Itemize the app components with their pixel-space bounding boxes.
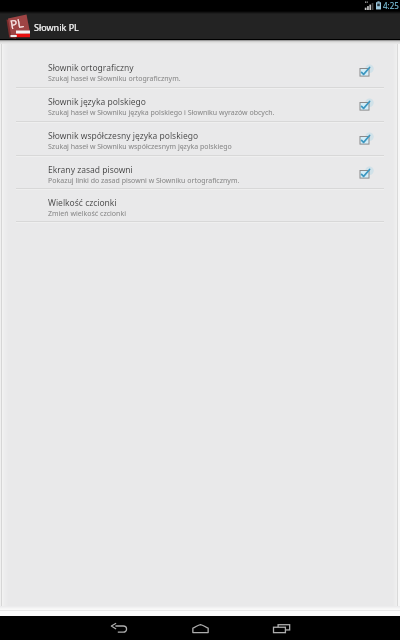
button[interactable]: Słownik współczesny języka polskiego xyxy=(0,123,400,155)
button[interactable]: Recent apps xyxy=(241,616,322,640)
staticText: Szukaj haseł w Słowniku ortograficznym. xyxy=(48,74,181,84)
staticText: Ekrany zasad pisowni xyxy=(48,164,133,176)
button[interactable]: Home xyxy=(160,616,241,640)
staticText: Wielkość czcionki xyxy=(48,197,117,209)
staticText: Zmień wielkość czcionki xyxy=(48,209,126,219)
staticText: Pokazuj linki do zasad pisowni w Słownik… xyxy=(48,176,240,186)
button[interactable]: Słownik ortograficzny xyxy=(0,55,400,87)
staticText: PL xyxy=(9,14,25,32)
staticText: Słownik PL xyxy=(34,21,79,33)
staticText: Słownik współczesny języka polskiego xyxy=(48,130,199,142)
staticText: Słownik ortograficzny xyxy=(48,62,134,74)
button[interactable]: Słownik języka polskiego xyxy=(0,89,400,121)
button[interactable]: Back xyxy=(79,616,160,640)
staticText: Szukaj haseł w Słowniku języka polskiego… xyxy=(48,108,275,118)
button[interactable]: Ekrany zasad pisowni xyxy=(0,157,400,188)
staticText: 4:25 xyxy=(383,0,399,11)
staticText: Słownik języka polskiego xyxy=(48,96,146,108)
staticText: Szukaj haseł w Słowniku współczesnym jęz… xyxy=(48,142,232,152)
button[interactable]: Wielkość czcionki xyxy=(0,190,400,221)
